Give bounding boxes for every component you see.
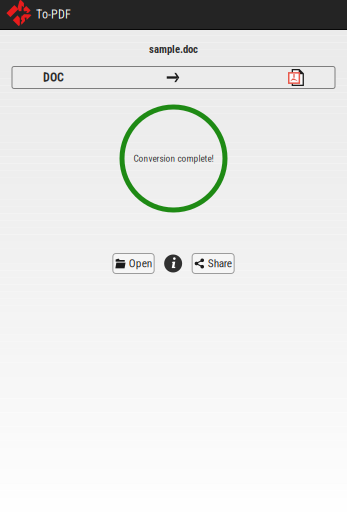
button[interactable]: Info xyxy=(164,254,182,272)
button[interactable]: Open xyxy=(113,253,154,273)
staticText: Share xyxy=(208,257,232,270)
button[interactable]: Share xyxy=(192,253,234,273)
staticText: Open xyxy=(129,257,152,270)
staticText: Conversion complete! xyxy=(133,153,213,164)
staticText: sample.doc xyxy=(149,43,198,55)
staticText: To-PDF xyxy=(36,7,71,22)
staticText: DOC xyxy=(43,70,64,85)
